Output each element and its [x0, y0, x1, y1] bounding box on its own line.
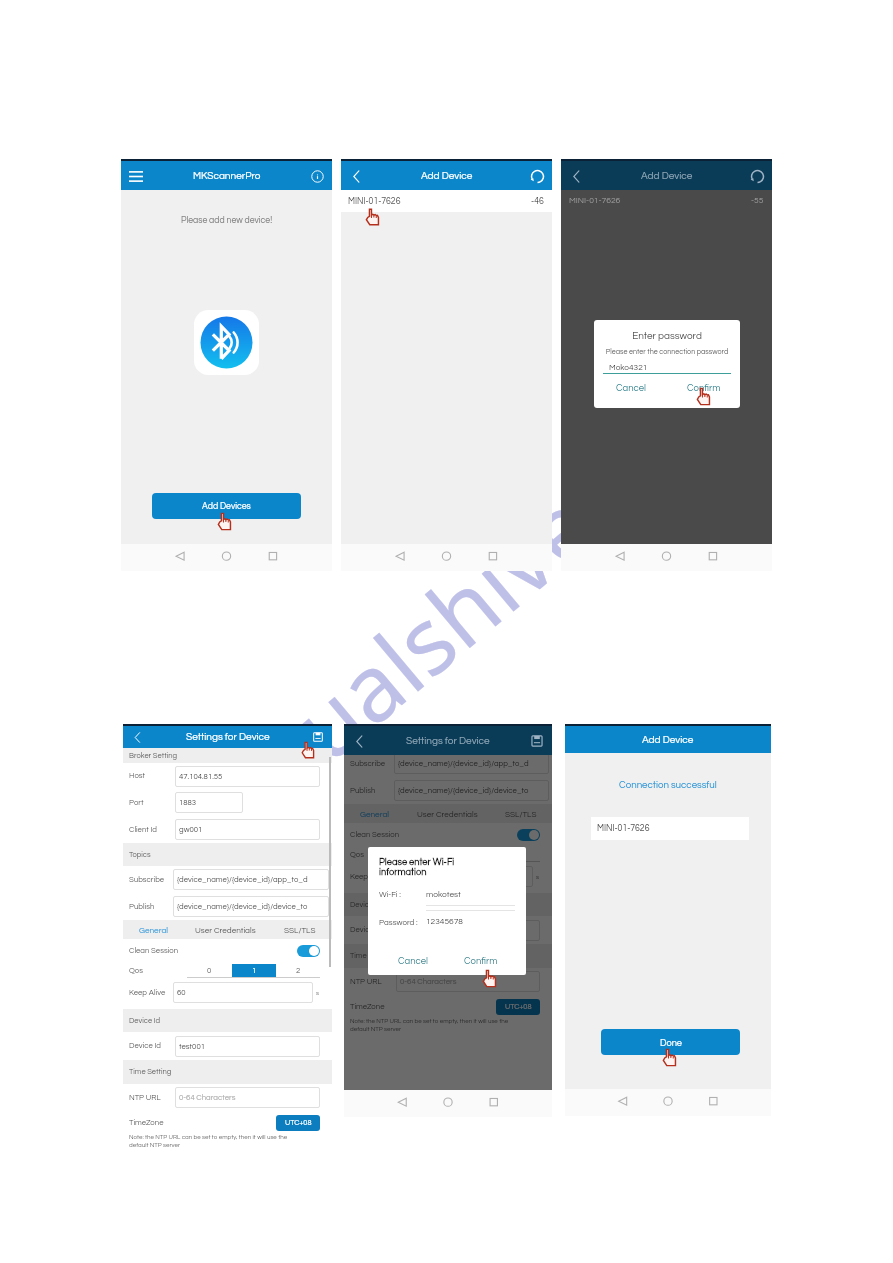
button[interactable]: UTC+08 — [496, 999, 540, 1015]
staticText: Clean Session — [129, 947, 179, 955]
staticText: MINI-01-7626 — [348, 197, 401, 206]
staticText: Clean Session — [350, 831, 400, 839]
staticText: Subscribe — [350, 760, 394, 768]
staticText: Add Device — [642, 735, 694, 745]
staticText: MINI-01-7626 — [569, 196, 621, 205]
staticText: Broker Setting — [129, 752, 177, 760]
staticText: Wi-Fi : — [379, 890, 426, 898]
button[interactable]: 2 — [276, 964, 320, 977]
button[interactable]: General — [344, 804, 405, 823]
staticText: NTP URL — [129, 1094, 175, 1102]
button[interactable]: General — [123, 920, 183, 939]
staticText: 60 — [398, 873, 407, 881]
staticText: 1883 — [179, 799, 197, 807]
staticText: 0-64 Characters — [179, 1094, 236, 1102]
staticText: Note: the NTP URL can be set to empty, t… — [350, 1018, 509, 1032]
staticText: Subscribe — [129, 876, 173, 884]
button[interactable]: Refresh — [527, 166, 547, 186]
staticText: -46 — [531, 197, 544, 206]
staticText: SSL/TLS — [505, 810, 537, 818]
button[interactable]: SSL/TLS — [489, 804, 552, 823]
staticText: SSL/TLS — [284, 926, 316, 934]
button[interactable]: Done — [601, 1029, 740, 1055]
button[interactable]: MINI-01-7626 — [341, 190, 552, 212]
staticText: test001 — [179, 1043, 205, 1051]
staticText: General — [139, 926, 168, 934]
staticText: 2 — [296, 967, 301, 975]
staticText: Keep Alive — [129, 989, 173, 997]
staticText: Confirm — [464, 956, 498, 966]
staticText: General — [360, 810, 389, 818]
button[interactable]: SSL/TLS — [268, 920, 332, 939]
staticText: MKScannerPro — [193, 171, 261, 181]
button[interactable]: Back — [346, 166, 366, 186]
staticText: {device_name}/{device_id}/device_to — [177, 903, 308, 911]
button[interactable]: Save — [309, 728, 327, 746]
staticText: s — [536, 874, 540, 880]
staticText: NTP URL — [350, 978, 396, 986]
staticText: {device_name}/{device_id}/app_to_d — [398, 760, 529, 768]
staticText: 1 — [252, 967, 257, 975]
button[interactable]: Clean Session toggle — [297, 945, 320, 957]
button[interactable]: Cancel — [594, 383, 667, 393]
staticText: Add Device — [641, 171, 693, 181]
staticText: Password : — [379, 918, 426, 926]
staticText: User Credentials — [417, 810, 478, 818]
staticText: User Credentials — [195, 926, 256, 934]
button[interactable]: Menu — [126, 166, 146, 186]
button[interactable]: User Credentials — [183, 920, 268, 939]
staticText: {device_name}/{device_id}/device_to — [398, 787, 529, 795]
staticText: Publish — [129, 903, 173, 911]
staticText: Device Id — [350, 901, 382, 909]
button[interactable]: User Credentials — [405, 804, 489, 823]
staticText: Device Id — [129, 1017, 161, 1025]
staticText: TimeZone — [129, 1119, 164, 1127]
staticText: Qos — [350, 851, 408, 859]
button[interactable]: 1 — [232, 964, 276, 977]
staticText: Enter password — [594, 331, 740, 341]
button[interactable]: Info — [307, 166, 327, 186]
staticText: Host — [129, 772, 175, 780]
staticText: mokotest — [426, 890, 461, 899]
staticText: Device Id — [129, 1042, 175, 1050]
button[interactable]: Add Devices — [152, 493, 301, 519]
staticText: Add Devices — [202, 502, 251, 511]
staticText: Qos — [129, 967, 187, 975]
staticText: Publish — [350, 787, 394, 795]
staticText: Confirm — [687, 383, 721, 393]
staticText: MINI-01-7626 — [597, 824, 650, 833]
staticText: Add Device — [421, 171, 473, 181]
button[interactable]: 1 — [452, 848, 496, 861]
button[interactable]: Confirm — [447, 947, 515, 975]
staticText: 60 — [177, 989, 186, 997]
staticText: Settings for Device — [186, 732, 270, 742]
staticText: Please add new device! — [181, 216, 273, 225]
staticText: s — [316, 990, 320, 996]
button[interactable]: Cancel — [379, 947, 447, 975]
button[interactable]: Clean Session toggle — [517, 829, 540, 841]
staticText: Connection successful — [619, 780, 717, 790]
staticText: Note: the NTP URL can be set to empty, t… — [129, 1134, 288, 1148]
staticText: Please enter the connection password — [594, 348, 740, 355]
staticText: Cancel — [398, 956, 428, 966]
staticText: Please enter Wi-Fi — [379, 857, 455, 867]
button[interactable]: Back — [128, 728, 146, 746]
staticText: information — [379, 867, 427, 877]
staticText: -55 — [751, 196, 764, 205]
staticText: {device_name}/{device_id}/app_to_d — [177, 876, 308, 884]
button[interactable]: UTC+08 — [276, 1115, 320, 1131]
staticText: 0 — [207, 967, 212, 975]
button[interactable]: 0 — [408, 848, 452, 861]
button[interactable]: Confirm — [667, 383, 740, 393]
button[interactable]: 0 — [187, 964, 232, 977]
staticText: Cancel — [616, 383, 646, 393]
staticText: Time Setting — [129, 1068, 172, 1076]
button[interactable]: 2 — [496, 848, 540, 861]
staticText: UTC+08 — [505, 1003, 532, 1011]
staticText: Port — [129, 799, 175, 807]
staticText: 0-64 Characters — [400, 978, 457, 986]
staticText: Topics — [129, 851, 151, 859]
staticText: 12345678 — [426, 917, 463, 926]
